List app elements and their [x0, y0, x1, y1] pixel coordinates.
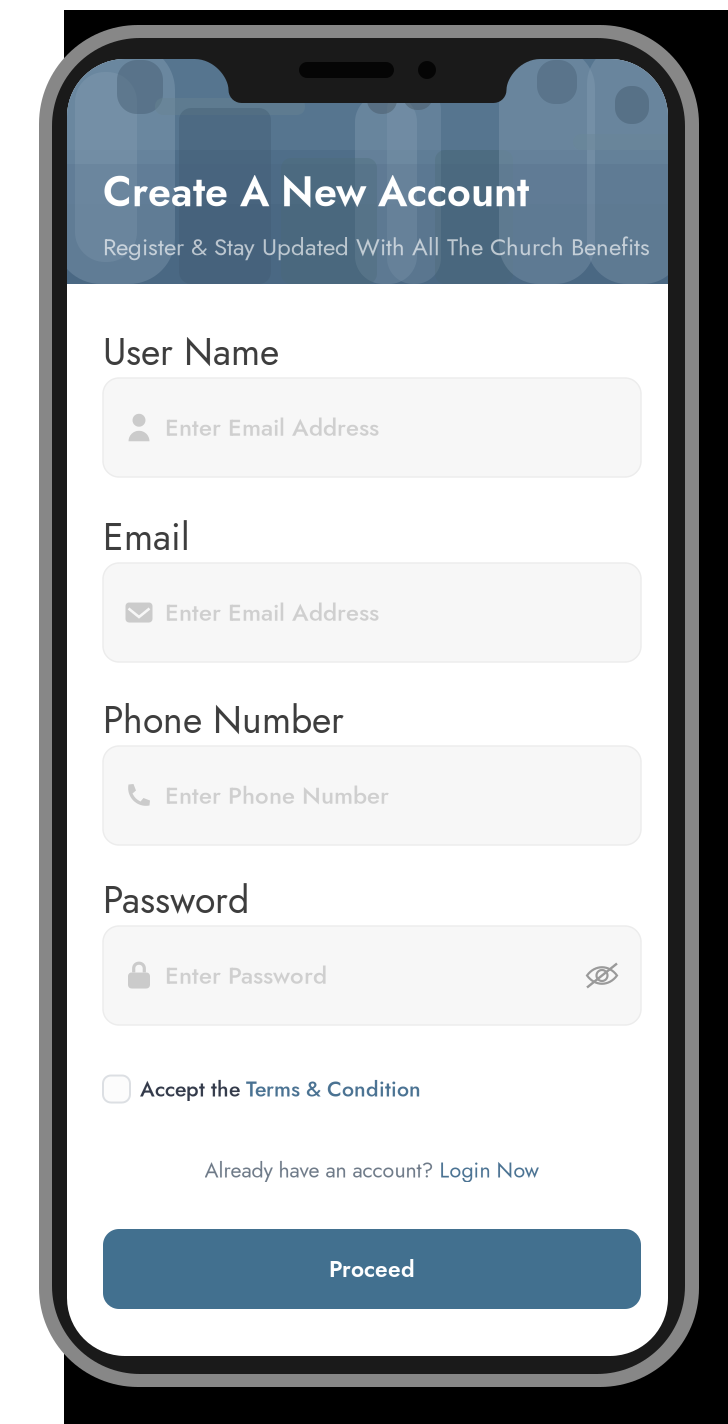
- staticText: Enter Password: [165, 958, 327, 993]
- staticText: Proceed: [329, 1253, 415, 1285]
- staticText: Create A New Account: [103, 162, 529, 222]
- button[interactable]: Already have an account?: [103, 1156, 641, 1184]
- staticText: Enter Email Address: [165, 595, 379, 630]
- staticText: Enter Email Address: [165, 410, 379, 445]
- staticText: Phone Number: [103, 693, 344, 747]
- button[interactable]: Enter Email Address: [103, 563, 641, 662]
- staticText: Already have an account?: [204, 1155, 439, 1185]
- staticText: Email: [103, 510, 190, 564]
- staticText: Password: [103, 873, 249, 927]
- button[interactable]: Enter Password: [103, 926, 641, 1025]
- button[interactable]: Proceed: [103, 1229, 641, 1309]
- staticText: Accept the: [140, 1074, 246, 1104]
- button[interactable]: Enter Phone Number: [103, 746, 641, 845]
- staticText: User Name: [103, 325, 279, 379]
- staticText: Terms & Condition: [246, 1074, 421, 1104]
- staticText: Register & Stay Updated With All The Chu…: [103, 230, 650, 264]
- staticText: Enter Phone Number: [165, 778, 389, 813]
- button[interactable]: Accept the: [103, 1074, 641, 1104]
- button[interactable]: Enter Email Address: [103, 378, 641, 477]
- staticText: Login Now: [439, 1155, 539, 1185]
